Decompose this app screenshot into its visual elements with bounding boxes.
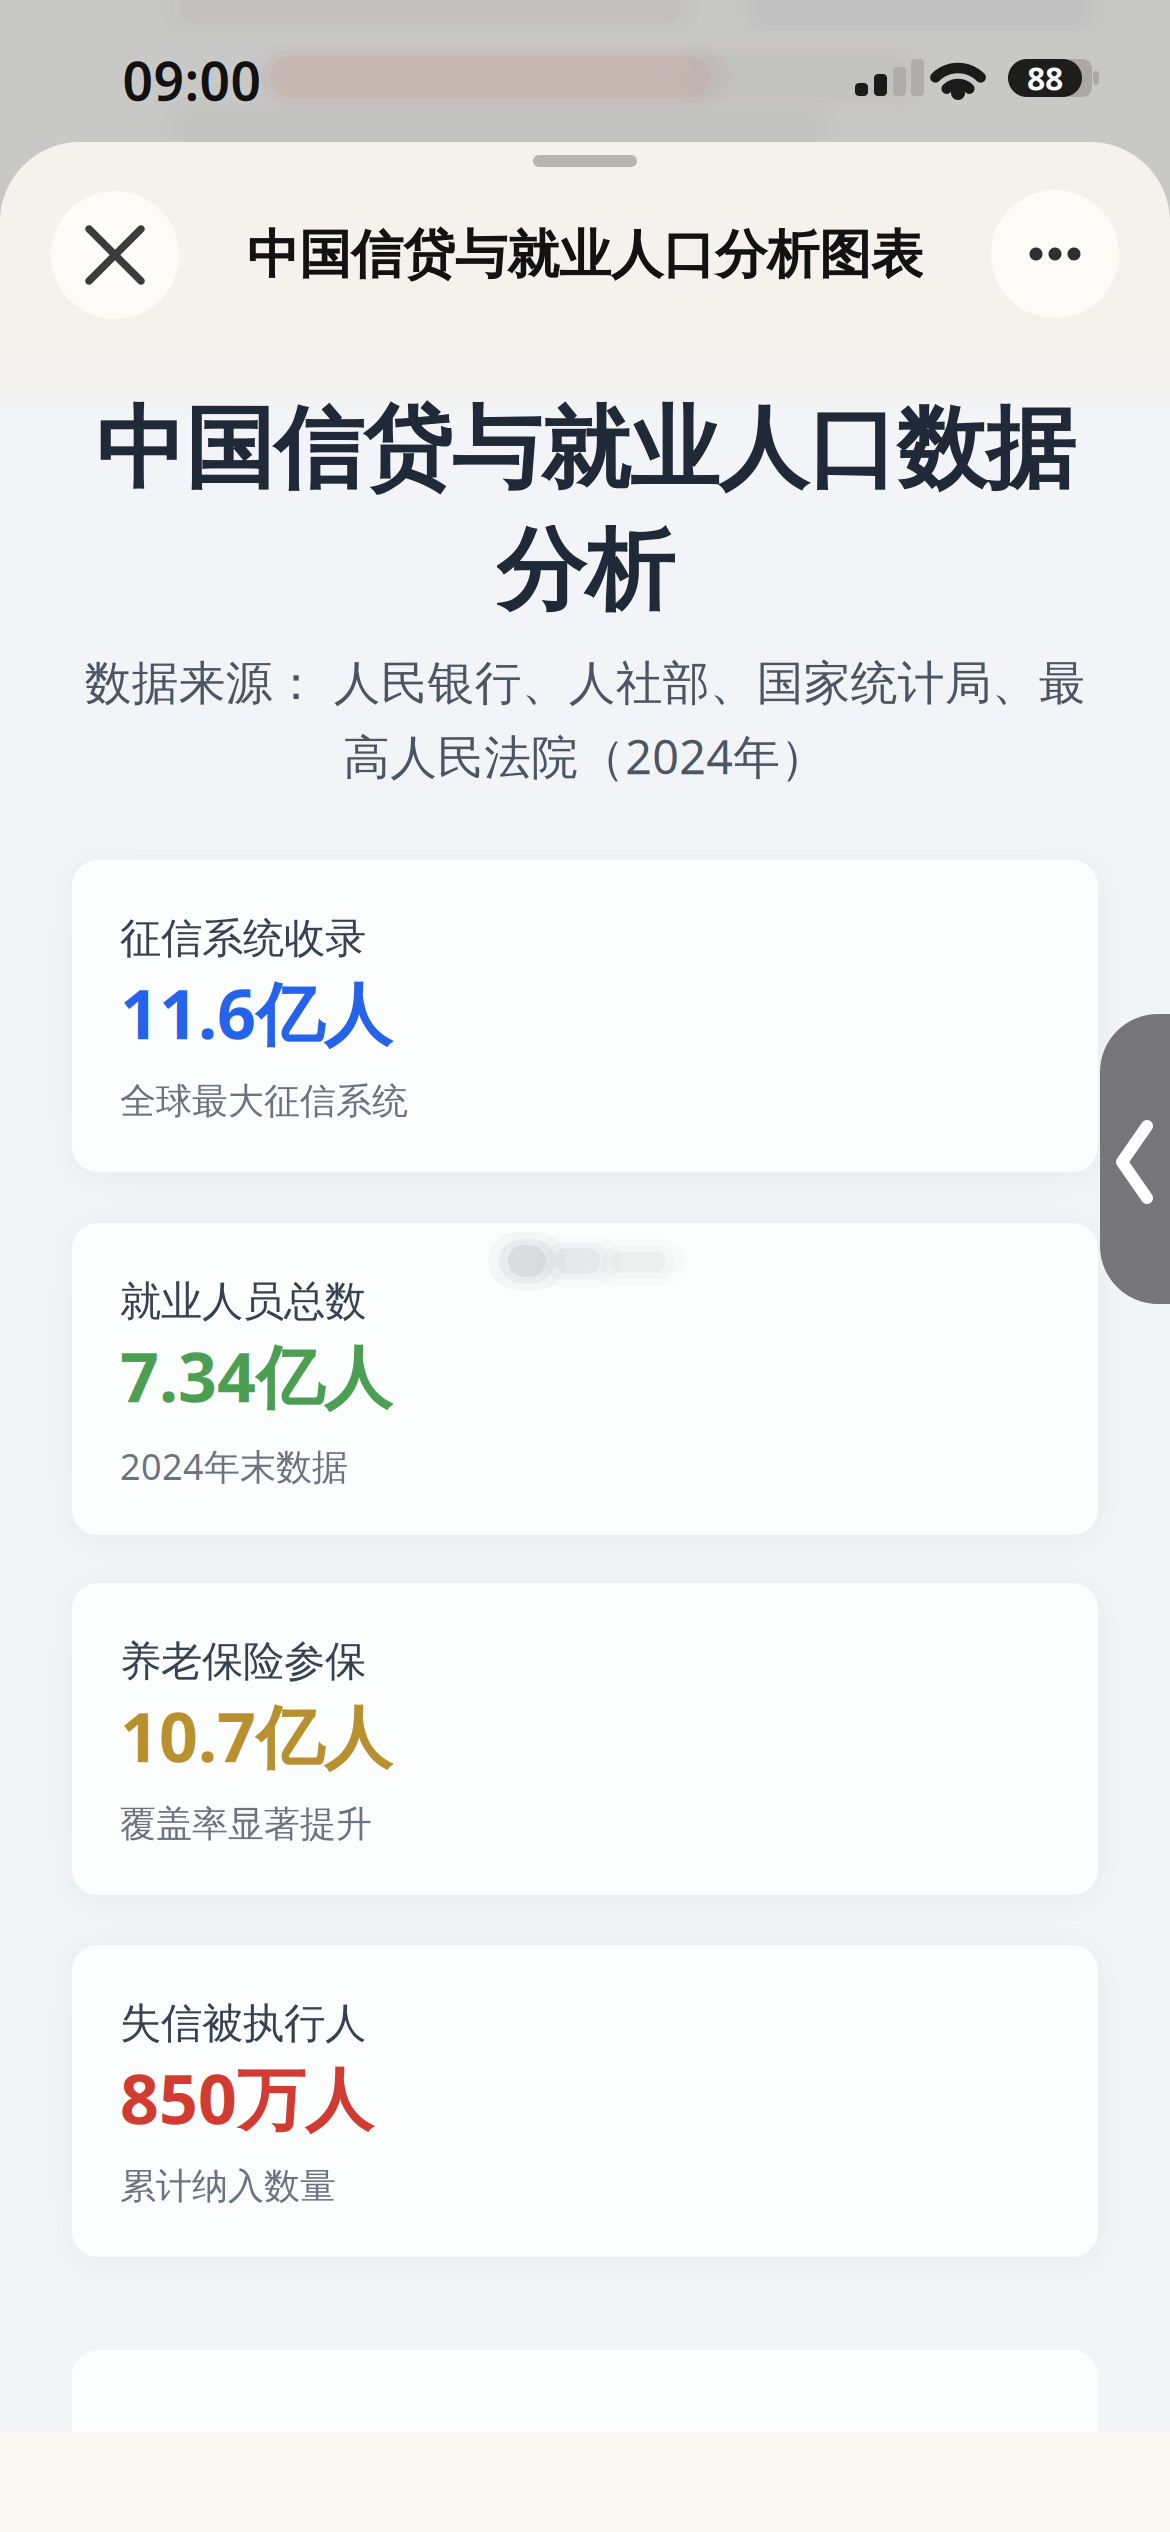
button[interactable]: Open side panel (1100, 1014, 1170, 1304)
staticText: 全球最大征信系统 (120, 1079, 408, 1123)
staticText: 850万人 (120, 2053, 373, 2143)
button[interactable]: More (991, 190, 1119, 318)
staticText: 09:00 (122, 45, 261, 115)
button[interactable]: Close (51, 191, 179, 319)
staticText: 中国信贷与就业人口分析图表 (247, 223, 923, 287)
staticText: 累计纳入数量 (120, 2164, 336, 2208)
staticText: 11.6亿人 (120, 968, 392, 1058)
staticText: 覆盖率显著提升 (120, 1802, 372, 1846)
staticText: 失信被执行人 (120, 1998, 366, 2049)
staticText: 就业人员总数 (120, 1276, 366, 1327)
staticText: 10.7亿人 (120, 1691, 392, 1781)
staticText: 中国信贷与就业人口数据 分析 (95, 394, 1074, 626)
staticText: 88 (1027, 57, 1063, 99)
staticText: 征信系统收录 (120, 913, 366, 964)
staticText: 7.34亿人 (120, 1331, 392, 1421)
staticText: 数据来源： 人民银行、人社部、国家统计局、最 高人民法院（2024年） (84, 655, 1085, 787)
staticText: 养老保险参保 (120, 1636, 366, 1687)
staticText: 2024年末数据 (120, 1442, 348, 1490)
